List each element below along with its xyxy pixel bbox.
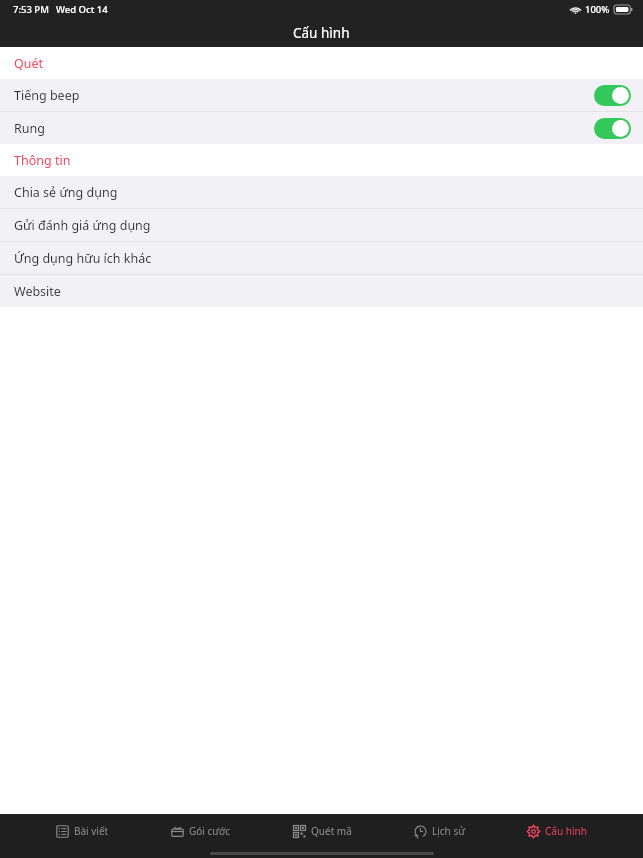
staticText: Rung [14, 120, 45, 137]
button[interactable]: Bài viết [50, 820, 115, 842]
staticText: Tiếng beep [14, 87, 80, 104]
button[interactable]: Rung [0, 112, 643, 144]
staticText: Bài viết [74, 824, 109, 838]
staticText: Quét [14, 55, 44, 72]
staticText: Cấu hình [293, 24, 350, 42]
staticText: Gửi đánh giá ứng dụng [14, 217, 151, 234]
button[interactable]: Website [0, 275, 643, 307]
button[interactable]: Tiếng beep [0, 79, 643, 111]
staticText: Thông tin [14, 152, 71, 169]
button[interactable]: Ứng dụng hữu ích khác [0, 242, 643, 274]
staticText: 100% [585, 3, 610, 16]
staticText: Wed Oct 14 [56, 3, 108, 16]
button[interactable]: Lịch sử [408, 820, 471, 842]
staticText: Ứng dụng hữu ích khác [14, 250, 152, 267]
button[interactable]: Gói cước [165, 820, 237, 842]
staticText: Website [14, 283, 61, 300]
button[interactable]: Toggle Tiếng beep [594, 85, 631, 106]
button[interactable]: Quét mã [287, 820, 358, 842]
staticText: Chia sẻ ứng dụng [14, 184, 118, 201]
staticText: Cấu hình [545, 824, 587, 838]
staticText: 7:53 PM [13, 3, 49, 16]
button[interactable]: Toggle Rung [594, 118, 631, 139]
staticText: Quét mã [311, 824, 352, 838]
button[interactable]: Cấu hình [521, 820, 593, 842]
button[interactable]: Chia sẻ ứng dụng [0, 176, 643, 208]
staticText: Gói cước [189, 824, 231, 838]
button[interactable]: Gửi đánh giá ứng dụng [0, 209, 643, 241]
staticText: Lịch sử [432, 824, 465, 838]
